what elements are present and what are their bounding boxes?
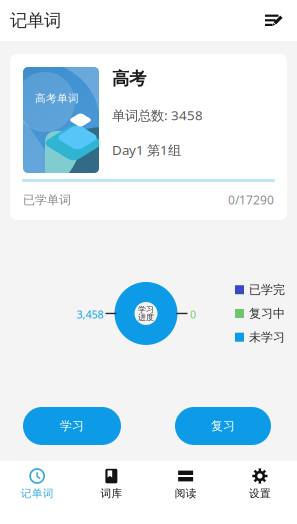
staticText: 已学单词: [23, 193, 71, 207]
staticText: 未学习: [249, 330, 285, 344]
staticText: 复习: [211, 419, 235, 433]
staticText: Day1 第1组: [112, 141, 181, 159]
button[interactable]: 词库: [74, 461, 148, 508]
staticText: 0/17290: [228, 192, 274, 208]
button[interactable]: 编辑: [259, 8, 289, 33]
button[interactable]: 复习: [175, 407, 271, 445]
staticText: 设置: [249, 487, 271, 500]
staticText: 已学完: [249, 282, 285, 297]
staticText: 进度: [138, 312, 154, 322]
button[interactable]: 设置: [223, 461, 297, 508]
staticText: 阅读: [175, 487, 197, 500]
staticText: 学习: [60, 419, 84, 433]
staticText: 单词总数: 3458: [112, 106, 203, 124]
button[interactable]: 阅读: [148, 461, 223, 508]
staticText: 词库: [100, 487, 122, 500]
staticText: 高考单词: [35, 92, 79, 105]
button[interactable]: 记单词: [0, 461, 74, 508]
button[interactable]: 学习: [23, 407, 121, 445]
staticText: 记单词: [10, 10, 61, 31]
staticText: 学习: [138, 305, 154, 314]
staticText: 0: [190, 307, 196, 322]
staticText: 记单词: [21, 487, 54, 500]
staticText: 3,458: [76, 307, 103, 322]
staticText: 高考: [112, 68, 146, 89]
staticText: 复习中: [249, 306, 285, 321]
